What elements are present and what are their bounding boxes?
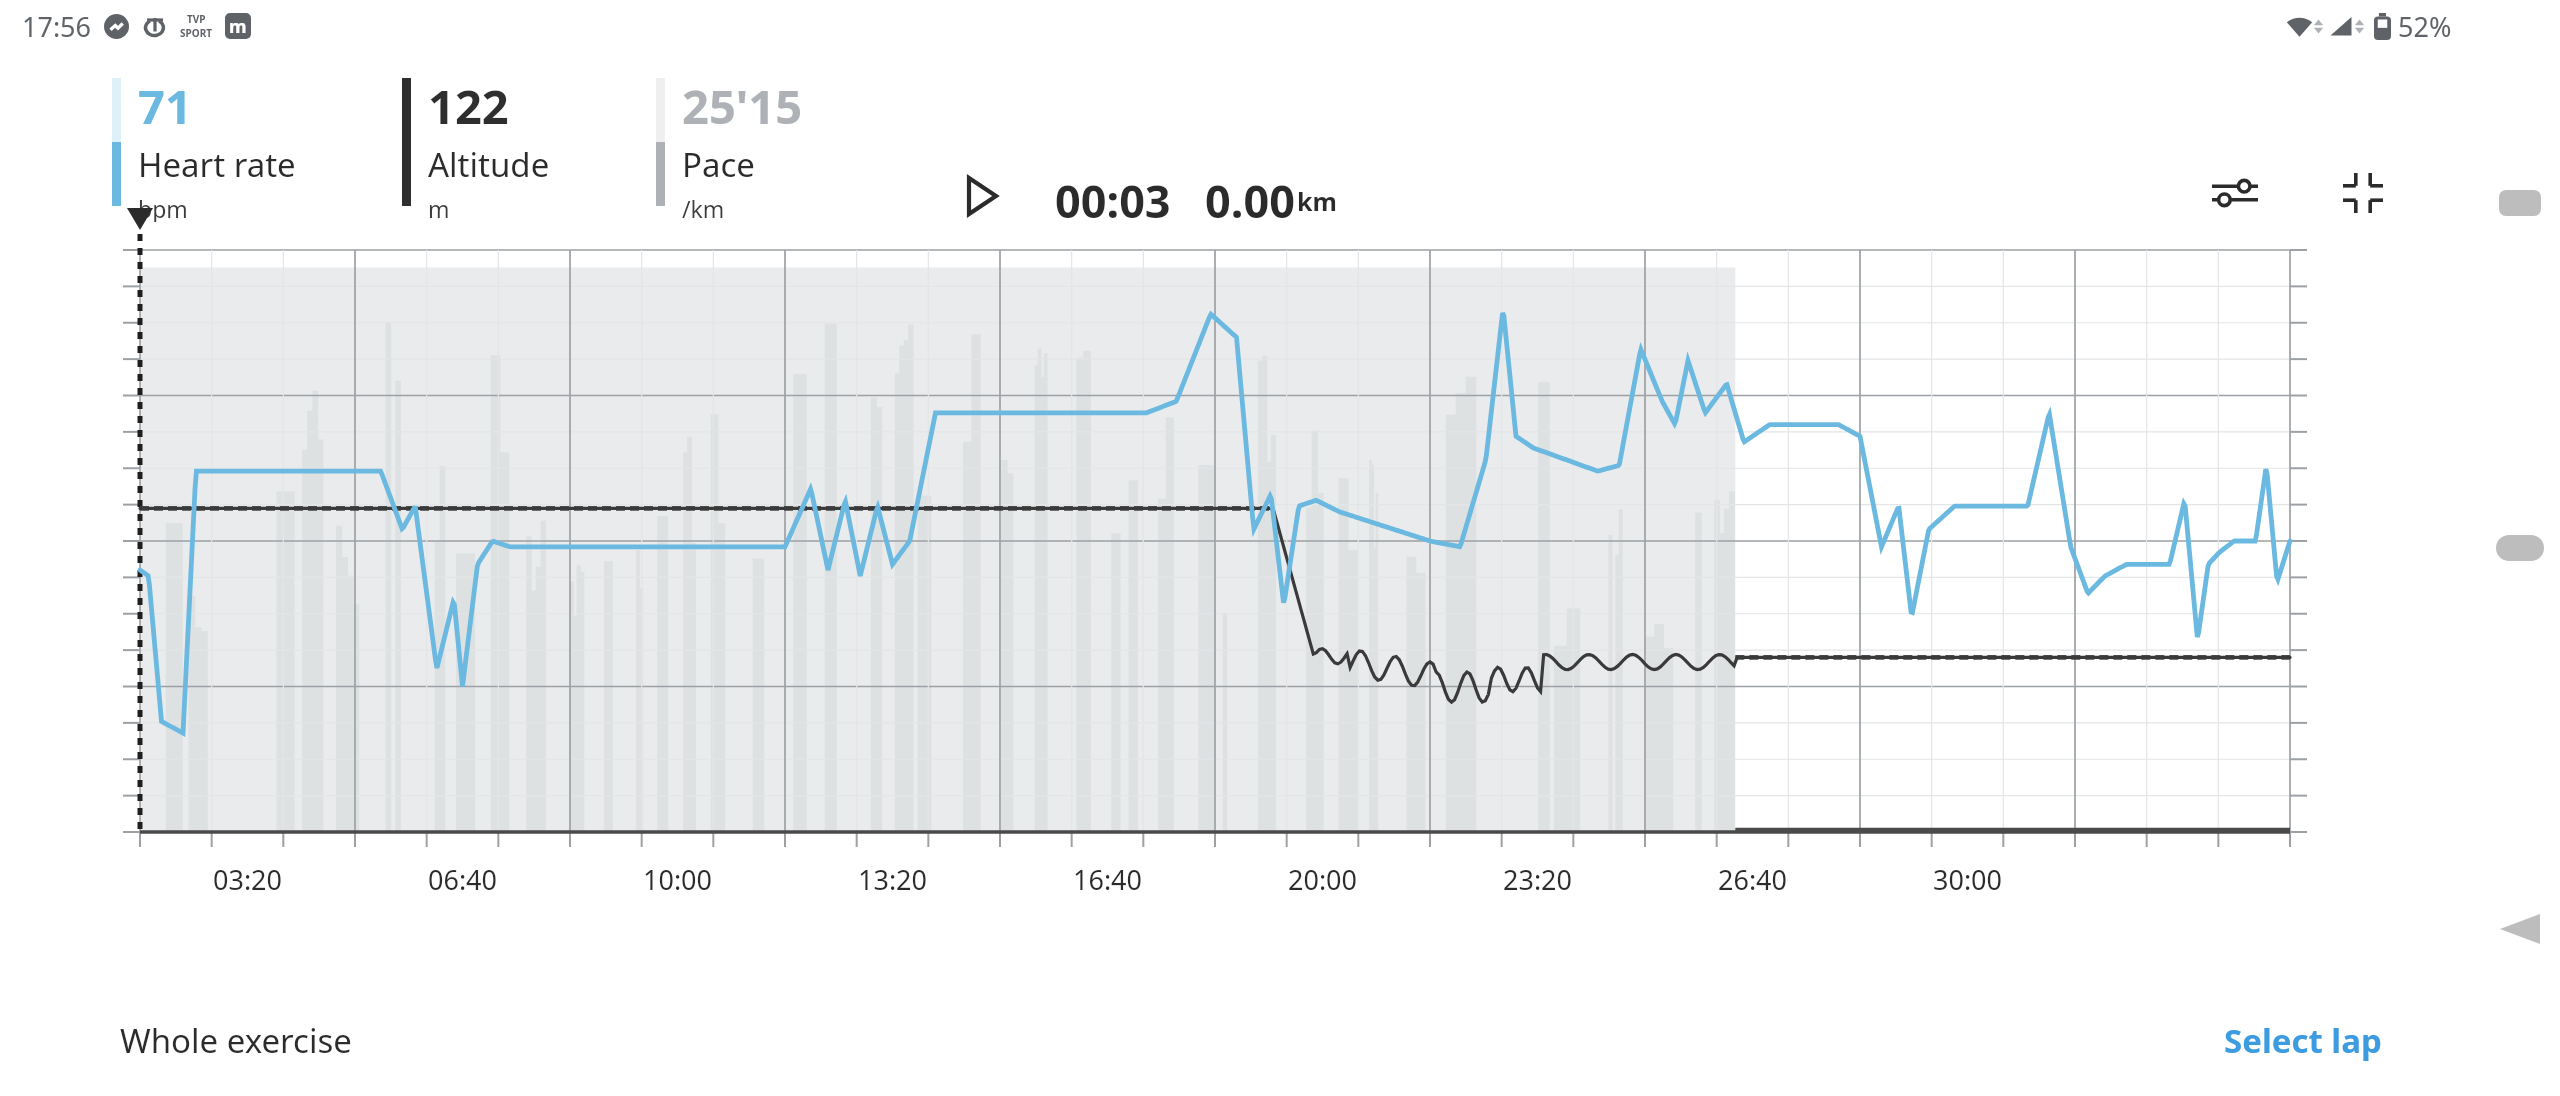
staticText: 23:20 xyxy=(1503,861,1573,898)
button[interactable]: Back xyxy=(2500,912,2540,946)
staticText: 30:00 xyxy=(1933,861,2003,898)
button[interactable]: 122 xyxy=(402,52,550,222)
button[interactable]: 71 xyxy=(112,52,296,222)
staticText: m xyxy=(428,193,450,222)
button[interactable]: Recents xyxy=(2499,190,2541,216)
staticText: TVP xyxy=(187,12,206,26)
staticText: Pace xyxy=(682,142,755,187)
staticText: 25'15 xyxy=(682,74,803,138)
staticText: 71 xyxy=(138,74,192,138)
staticText: /km xyxy=(682,193,725,222)
staticText: bpm xyxy=(138,193,188,222)
staticText: 16:40 xyxy=(1073,861,1143,898)
staticText: 122 xyxy=(428,74,509,138)
staticText: Select lap xyxy=(2224,1018,2382,1063)
staticText: Whole exercise xyxy=(120,1018,352,1063)
staticText: 26:40 xyxy=(1718,861,1788,898)
staticText: 17:56 xyxy=(22,8,92,45)
staticText: 52% xyxy=(2398,8,2452,45)
staticText: 00:03 xyxy=(1055,170,1171,222)
staticText: m xyxy=(229,14,247,39)
button[interactable]: Select lap xyxy=(2214,1008,2392,1073)
button[interactable]: 25'15 xyxy=(656,52,803,222)
staticText: 0.00 xyxy=(1205,170,1295,222)
button[interactable]: Settings xyxy=(2202,164,2268,222)
staticText: 03:20 xyxy=(213,861,283,898)
button[interactable]: Collapse xyxy=(2330,164,2396,222)
staticText: Altitude xyxy=(428,142,550,187)
staticText: Heart rate xyxy=(138,142,296,187)
staticText: 13:20 xyxy=(858,861,928,898)
button[interactable]: Play xyxy=(953,170,1011,222)
staticText: 10:00 xyxy=(643,861,713,898)
button[interactable]: Home xyxy=(2496,535,2544,561)
staticText: km xyxy=(1297,184,1337,218)
staticText: 20:00 xyxy=(1288,861,1358,898)
staticText: SPORT xyxy=(180,26,212,40)
staticText: 06:40 xyxy=(428,861,498,898)
